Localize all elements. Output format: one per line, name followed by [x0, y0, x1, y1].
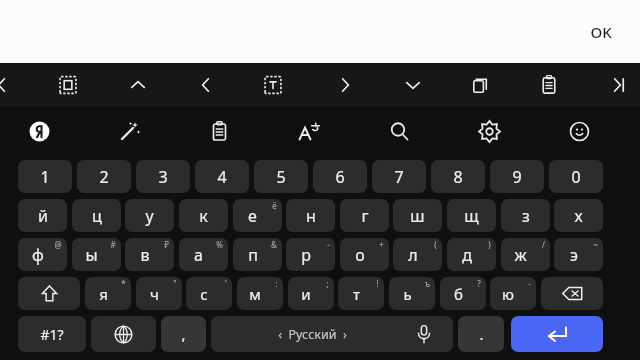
button[interactable]: я	[85, 277, 131, 310]
button[interactable]: Backspace	[541, 277, 603, 310]
button[interactable]: Shift	[18, 277, 80, 310]
button[interactable]: й	[18, 199, 67, 232]
staticText: 7	[394, 166, 404, 188]
button[interactable]: ш	[393, 199, 442, 232]
staticText: '	[225, 278, 227, 289]
staticText: ~	[593, 239, 598, 250]
button[interactable]: Yandex	[15, 107, 63, 155]
staticText: +	[379, 239, 384, 250]
button[interactable]: л	[393, 238, 442, 271]
button[interactable]: с	[186, 277, 232, 310]
button[interactable]: Move up	[116, 63, 160, 107]
button[interactable]: п	[233, 238, 282, 271]
staticText: ъ	[425, 278, 430, 289]
staticText: т	[353, 284, 360, 304]
button[interactable]: Symbols	[18, 316, 86, 352]
staticText: з	[522, 205, 530, 227]
button[interactable]: ы	[72, 238, 121, 271]
button[interactable]: Search	[375, 107, 423, 155]
button[interactable]: Move left	[184, 63, 228, 107]
staticText: ё	[272, 200, 277, 211]
button[interactable]: Change language	[91, 316, 156, 352]
button[interactable]: Copy	[459, 63, 503, 107]
staticText: б	[454, 284, 463, 304]
button[interactable]: 1	[18, 160, 72, 193]
staticText: ш	[410, 205, 425, 227]
staticText: ₽	[164, 239, 169, 250]
staticText: ю	[502, 284, 514, 304]
button[interactable]: б	[440, 277, 486, 310]
button[interactable]: в	[125, 238, 174, 271]
button[interactable]: э	[554, 238, 603, 271]
button[interactable]: Emoji	[555, 107, 603, 155]
button[interactable]: Enter	[511, 316, 603, 352]
staticText: *	[121, 278, 126, 289]
button[interactable]: ф	[18, 238, 67, 271]
button[interactable]: ч	[136, 277, 182, 310]
button[interactable]: Paste	[527, 63, 571, 107]
button[interactable]: ц	[72, 199, 121, 232]
staticText: щ	[464, 205, 479, 227]
button[interactable]: 7	[372, 160, 426, 193]
button[interactable]: Translate	[285, 107, 333, 155]
button[interactable]: 9	[490, 160, 544, 193]
button[interactable]: х	[554, 199, 603, 232]
staticText: 4	[217, 166, 227, 188]
button[interactable]: 6	[313, 160, 367, 193]
button[interactable]: г	[340, 199, 389, 232]
button[interactable]: 8	[431, 160, 485, 193]
button[interactable]: м	[237, 277, 283, 310]
button[interactable]: Space	[211, 316, 453, 352]
button[interactable]: н	[286, 199, 335, 232]
button[interactable]: End	[595, 63, 639, 107]
button[interactable]: у	[125, 199, 174, 232]
button[interactable]: ь	[389, 277, 435, 310]
button[interactable]: Select all	[46, 63, 90, 107]
button[interactable]: е	[233, 199, 282, 232]
button[interactable]: т	[338, 277, 384, 310]
button[interactable]: Previous	[0, 63, 24, 107]
staticText: н	[306, 205, 316, 227]
staticText: ь	[403, 284, 412, 304]
staticText: ч	[150, 284, 159, 304]
button[interactable]: д	[447, 238, 496, 271]
button[interactable]: з	[501, 199, 550, 232]
staticText: ф	[32, 244, 44, 266]
button[interactable]: 0	[549, 160, 603, 193]
button[interactable]: и	[288, 277, 334, 310]
staticText: 2	[99, 166, 109, 188]
button[interactable]: Move down	[391, 63, 435, 107]
button[interactable]: а	[179, 238, 228, 271]
button[interactable]: ю	[490, 277, 536, 310]
button[interactable]: 5	[254, 160, 308, 193]
button[interactable]: Clipboard	[195, 107, 243, 155]
button[interactable]: 2	[77, 160, 131, 193]
staticText: р	[301, 244, 311, 266]
staticText: 6	[335, 166, 345, 188]
button[interactable]: 4	[195, 160, 249, 193]
button[interactable]: OK	[574, 12, 628, 52]
button[interactable]: Move right	[323, 63, 367, 107]
button[interactable]: Text effects	[105, 107, 153, 155]
button[interactable]: Settings	[465, 107, 513, 155]
staticText: /	[542, 239, 545, 250]
button[interactable]: .	[458, 316, 504, 352]
button[interactable]: к	[179, 199, 228, 232]
staticText: а	[194, 244, 203, 266]
button[interactable]: ж	[501, 238, 550, 271]
button[interactable]: о	[340, 238, 389, 271]
staticText: ?	[477, 278, 481, 289]
staticText: -	[327, 239, 330, 250]
staticText: у	[145, 205, 154, 227]
button[interactable]: ,	[161, 316, 206, 352]
button[interactable]: Select text	[251, 63, 295, 107]
button[interactable]: щ	[447, 199, 496, 232]
staticText: OK	[590, 22, 612, 42]
staticText: х	[574, 205, 583, 227]
staticText: -	[528, 278, 531, 289]
staticText: г	[361, 205, 369, 227]
staticText: @	[54, 239, 62, 250]
button[interactable]: 3	[136, 160, 190, 193]
staticText: 3	[158, 166, 168, 188]
button[interactable]: р	[286, 238, 335, 271]
